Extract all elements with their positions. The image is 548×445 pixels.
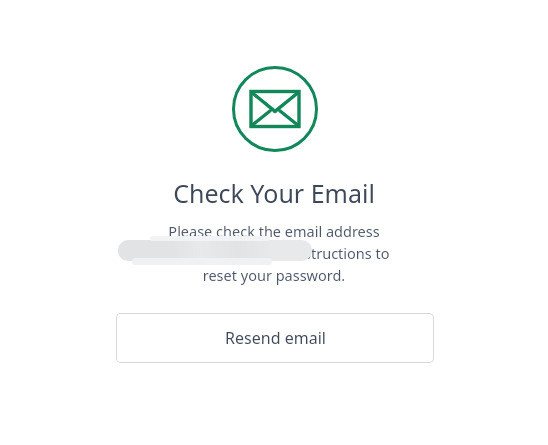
staticText: Please check the email address for instr… (60, 221, 488, 285)
button[interactable]: Resend email (116, 313, 434, 363)
staticText: Check Your Email (0, 176, 548, 210)
staticText: Resend email (225, 327, 326, 349)
